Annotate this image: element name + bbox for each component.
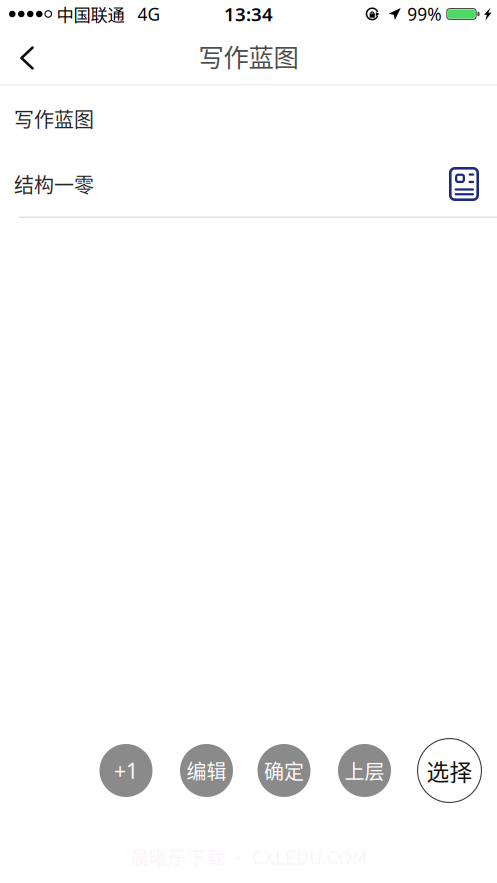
staticText: 写作蓝图 xyxy=(198,38,298,74)
button[interactable]: 编辑 xyxy=(180,744,233,797)
staticText: 结构一零 xyxy=(14,169,94,198)
button[interactable]: Back xyxy=(0,28,56,84)
staticText: 99% xyxy=(407,2,441,25)
button[interactable]: 确定 xyxy=(257,744,310,797)
button[interactable]: 上层 xyxy=(338,744,391,797)
staticText: 4G xyxy=(137,2,160,25)
staticText: 上层 xyxy=(344,756,384,785)
staticText: 确定 xyxy=(264,756,304,785)
staticText: +1 xyxy=(114,756,138,785)
staticText: 编辑 xyxy=(186,756,226,785)
staticText: 写作蓝图 xyxy=(14,104,94,133)
staticText: 中国联通 xyxy=(56,1,124,27)
button[interactable]: +1 xyxy=(99,744,152,797)
staticText: 13:34 xyxy=(224,2,273,26)
button[interactable]: 结构一零 xyxy=(0,151,497,218)
staticText: 选择 xyxy=(426,754,472,787)
button[interactable]: 选择 xyxy=(417,738,482,803)
staticText: 晨曦乐下载 · CXLEDU.COM xyxy=(130,843,367,870)
